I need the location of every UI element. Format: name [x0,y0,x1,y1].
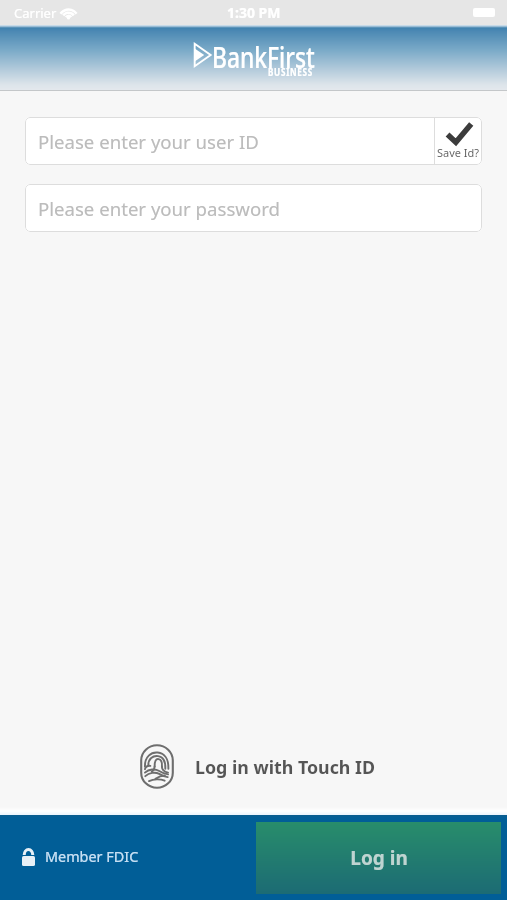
button[interactable]: Please enter your password [25,184,482,232]
staticText: Please enter your user ID [38,129,259,154]
button[interactable]: Touch ID [140,744,375,789]
staticText: Member FDIC [45,847,139,867]
staticText: BankFirst [212,38,315,76]
button[interactable]: Log in [256,822,501,894]
staticText: Save Id? [437,145,480,160]
other: Touch ID [140,744,174,789]
button[interactable]: Please enter your user ID [25,117,434,165]
button[interactable]: Member FDIC [22,847,139,867]
button[interactable]: Save Id? [435,117,482,165]
staticText: Log in [350,845,408,871]
staticText: Please enter your password [38,196,280,221]
staticText: Log in with Touch ID [195,755,375,779]
staticText: BUSINESS [268,65,313,79]
staticText: 1:30 PM [227,3,281,22]
staticText: Carrier [14,4,57,22]
